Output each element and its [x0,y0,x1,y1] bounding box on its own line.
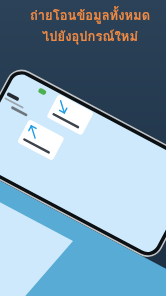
staticText: ถ่ายโอนข้อมูลทั้งหมด [16,5,164,26]
staticText: ไปยังอุปกรณ์ใหม่ [16,26,164,47]
